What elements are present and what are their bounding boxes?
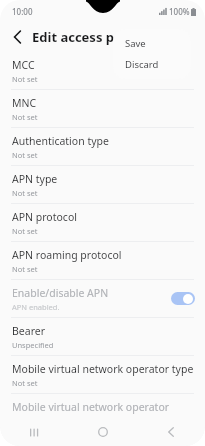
- staticText: Edit access point: [32, 28, 141, 46]
- button[interactable]: Home: [69, 418, 137, 446]
- staticText: Not set: [12, 188, 38, 198]
- button[interactable]: APN roaming protocol: [0, 242, 205, 279]
- staticText: APN enabled.: [12, 302, 60, 312]
- button[interactable]: Recent apps: [0, 418, 69, 446]
- staticText: Mobile virtual network operator value: [12, 400, 195, 414]
- staticText: Enable/disable APN: [12, 286, 109, 300]
- button[interactable]: APN type: [0, 166, 205, 203]
- staticText: MCC: [12, 58, 35, 72]
- staticText: Save: [125, 37, 146, 50]
- staticText: Not set: [12, 150, 38, 160]
- staticText: Discard: [125, 58, 159, 71]
- button[interactable]: Back: [6, 26, 28, 48]
- staticText: 100%: [169, 6, 190, 17]
- button[interactable]: APN protocol: [0, 204, 205, 241]
- button[interactable]: Back: [137, 418, 205, 446]
- staticText: APN roaming protocol: [12, 248, 122, 262]
- button[interactable]: Mobile virtual network operator value: [0, 394, 205, 431]
- button[interactable]: MNC: [0, 90, 205, 127]
- staticText: Not set: [12, 378, 38, 388]
- staticText: MNC: [12, 96, 37, 110]
- button[interactable]: Save: [113, 33, 191, 54]
- staticText: Not set: [12, 264, 38, 274]
- button[interactable]: Discard: [113, 54, 191, 75]
- staticText: Mobile virtual network operator type: [12, 362, 194, 376]
- staticText: Not set: [12, 112, 38, 122]
- staticText: Not set: [12, 74, 38, 84]
- button[interactable]: Enable or disable APN: [171, 292, 195, 305]
- button[interactable]: Enable/disable APN: [0, 280, 205, 317]
- staticText: Authentication type: [12, 134, 109, 148]
- button[interactable]: Mobile virtual network operator type: [0, 356, 205, 393]
- staticText: APN type: [12, 172, 58, 186]
- button[interactable]: Bearer: [0, 318, 205, 355]
- staticText: 10:00: [12, 6, 33, 17]
- button[interactable]: MCC: [0, 52, 205, 89]
- staticText: Not set: [12, 226, 38, 236]
- staticText: APN protocol: [12, 210, 77, 224]
- staticText: Unspecified: [12, 340, 54, 350]
- button[interactable]: Authentication type: [0, 128, 205, 165]
- staticText: Bearer: [12, 324, 46, 338]
